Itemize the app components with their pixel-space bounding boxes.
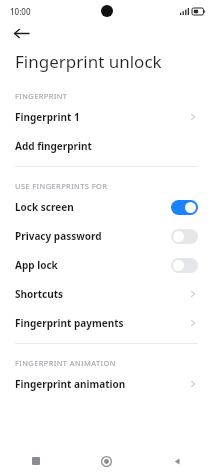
button[interactable]: Shortcuts (0, 283, 213, 305)
button[interactable]: Back (142, 448, 213, 474)
staticText: USE FINGERPRINTS FOR (15, 181, 108, 191)
staticText: Fingerprint animation (15, 377, 188, 391)
staticText: FINGERPRINT ANIMATION (15, 358, 116, 368)
staticText: 10:00 (10, 6, 31, 17)
button[interactable]: Home (71, 448, 142, 474)
button[interactable]: App lock (0, 254, 213, 276)
button[interactable]: Add fingerprint (0, 135, 213, 157)
staticText: FINGERPRINT (15, 91, 68, 101)
staticText: Fingerprint unlock (15, 50, 162, 73)
button[interactable]: Fingerprint animation (0, 373, 213, 395)
button[interactable]: Back (0, 22, 40, 44)
staticText: Fingerprint payments (15, 316, 188, 330)
button[interactable]: Fingerprint 1 (0, 106, 213, 128)
button[interactable]: Lock screen (0, 196, 213, 218)
staticText: Privacy password (15, 229, 171, 243)
staticText: Shortcuts (15, 287, 188, 301)
staticText: Fingerprint 1 (15, 110, 188, 124)
staticText: Lock screen (15, 200, 171, 214)
button[interactable]: Fingerprint payments (0, 312, 213, 334)
staticText: App lock (15, 258, 171, 272)
button[interactable]: Recent apps (0, 448, 71, 474)
button[interactable]: Privacy password (0, 225, 213, 247)
staticText: Add fingerprint (15, 139, 198, 153)
